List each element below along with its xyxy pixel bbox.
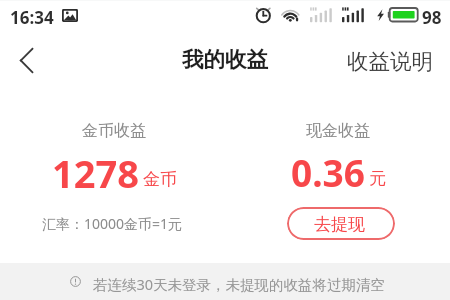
staticText: 0.36: [291, 147, 365, 197]
button[interactable]: 去提现: [287, 207, 395, 240]
staticText: 若连续30天未登录，未提现的收益将过期清空: [93, 274, 386, 294]
staticText: 去提现: [314, 214, 365, 235]
staticText: 我的收益: [182, 46, 268, 73]
staticText: 收益说明: [347, 48, 433, 75]
staticText: 汇率：10000金币=1元: [42, 214, 183, 233]
staticText: 16:34: [10, 6, 54, 29]
button[interactable]: Back: [4, 38, 48, 82]
staticText: 现金收益: [306, 121, 370, 141]
staticText: 1278: [52, 147, 139, 199]
staticText: 98: [422, 6, 442, 29]
staticText: 金币收益: [82, 121, 146, 141]
staticText: 金币: [143, 169, 177, 190]
button[interactable]: 收益说明: [347, 48, 433, 75]
staticText: 元: [369, 168, 386, 189]
